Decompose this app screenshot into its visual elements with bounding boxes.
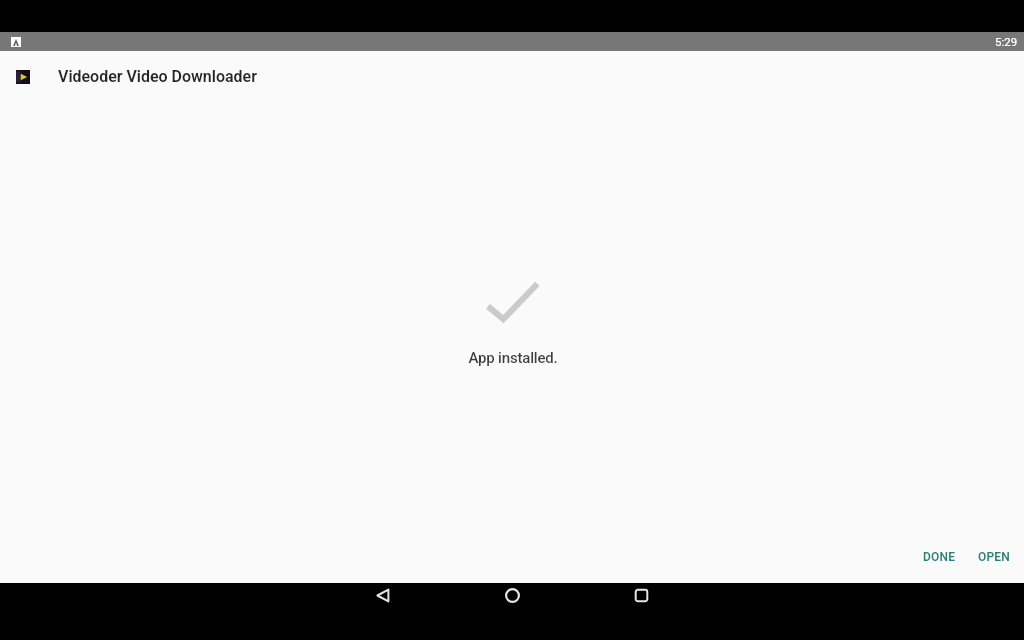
button[interactable]: OPEN (967, 543, 1022, 571)
staticText: OPEN (978, 550, 1011, 564)
button[interactable]: DONE (912, 543, 967, 571)
button[interactable]: Back (319, 583, 448, 640)
staticText: 5:29 (995, 35, 1018, 48)
button[interactable]: Home (448, 583, 577, 640)
staticText: Videoder Video Downloader (58, 67, 257, 86)
staticText: DONE (923, 550, 956, 564)
button[interactable]: Recent apps (577, 583, 706, 640)
staticText: App installed. (1, 349, 1024, 367)
